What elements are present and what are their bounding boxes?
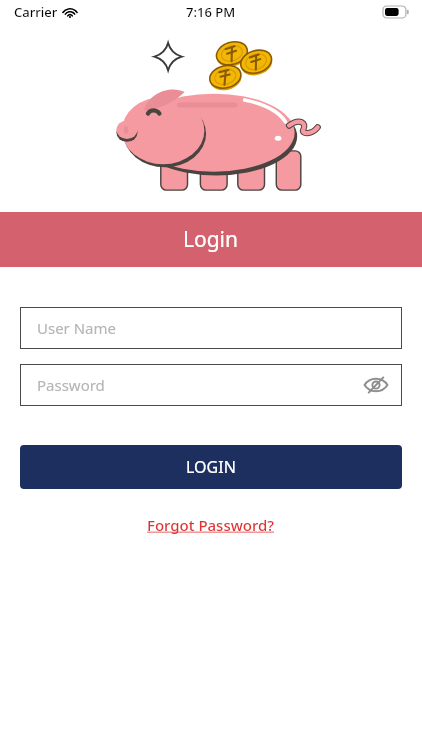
button[interactable]: Show password <box>360 369 392 401</box>
staticText: User Name <box>37 318 117 338</box>
staticText: Carrier <box>14 3 58 21</box>
staticText: 7:16 PM <box>186 3 236 21</box>
staticText: Password <box>37 375 105 395</box>
button[interactable]: User Name <box>20 307 402 349</box>
staticText: Forgot Password? <box>147 515 275 535</box>
button[interactable]: Login <box>0 212 422 267</box>
button[interactable]: Forgot Password? <box>141 513 281 537</box>
button[interactable]: Password <box>20 364 402 406</box>
staticText: LOGIN <box>186 456 236 478</box>
button[interactable]: LOGIN <box>20 445 402 489</box>
staticText: Login <box>183 225 239 254</box>
